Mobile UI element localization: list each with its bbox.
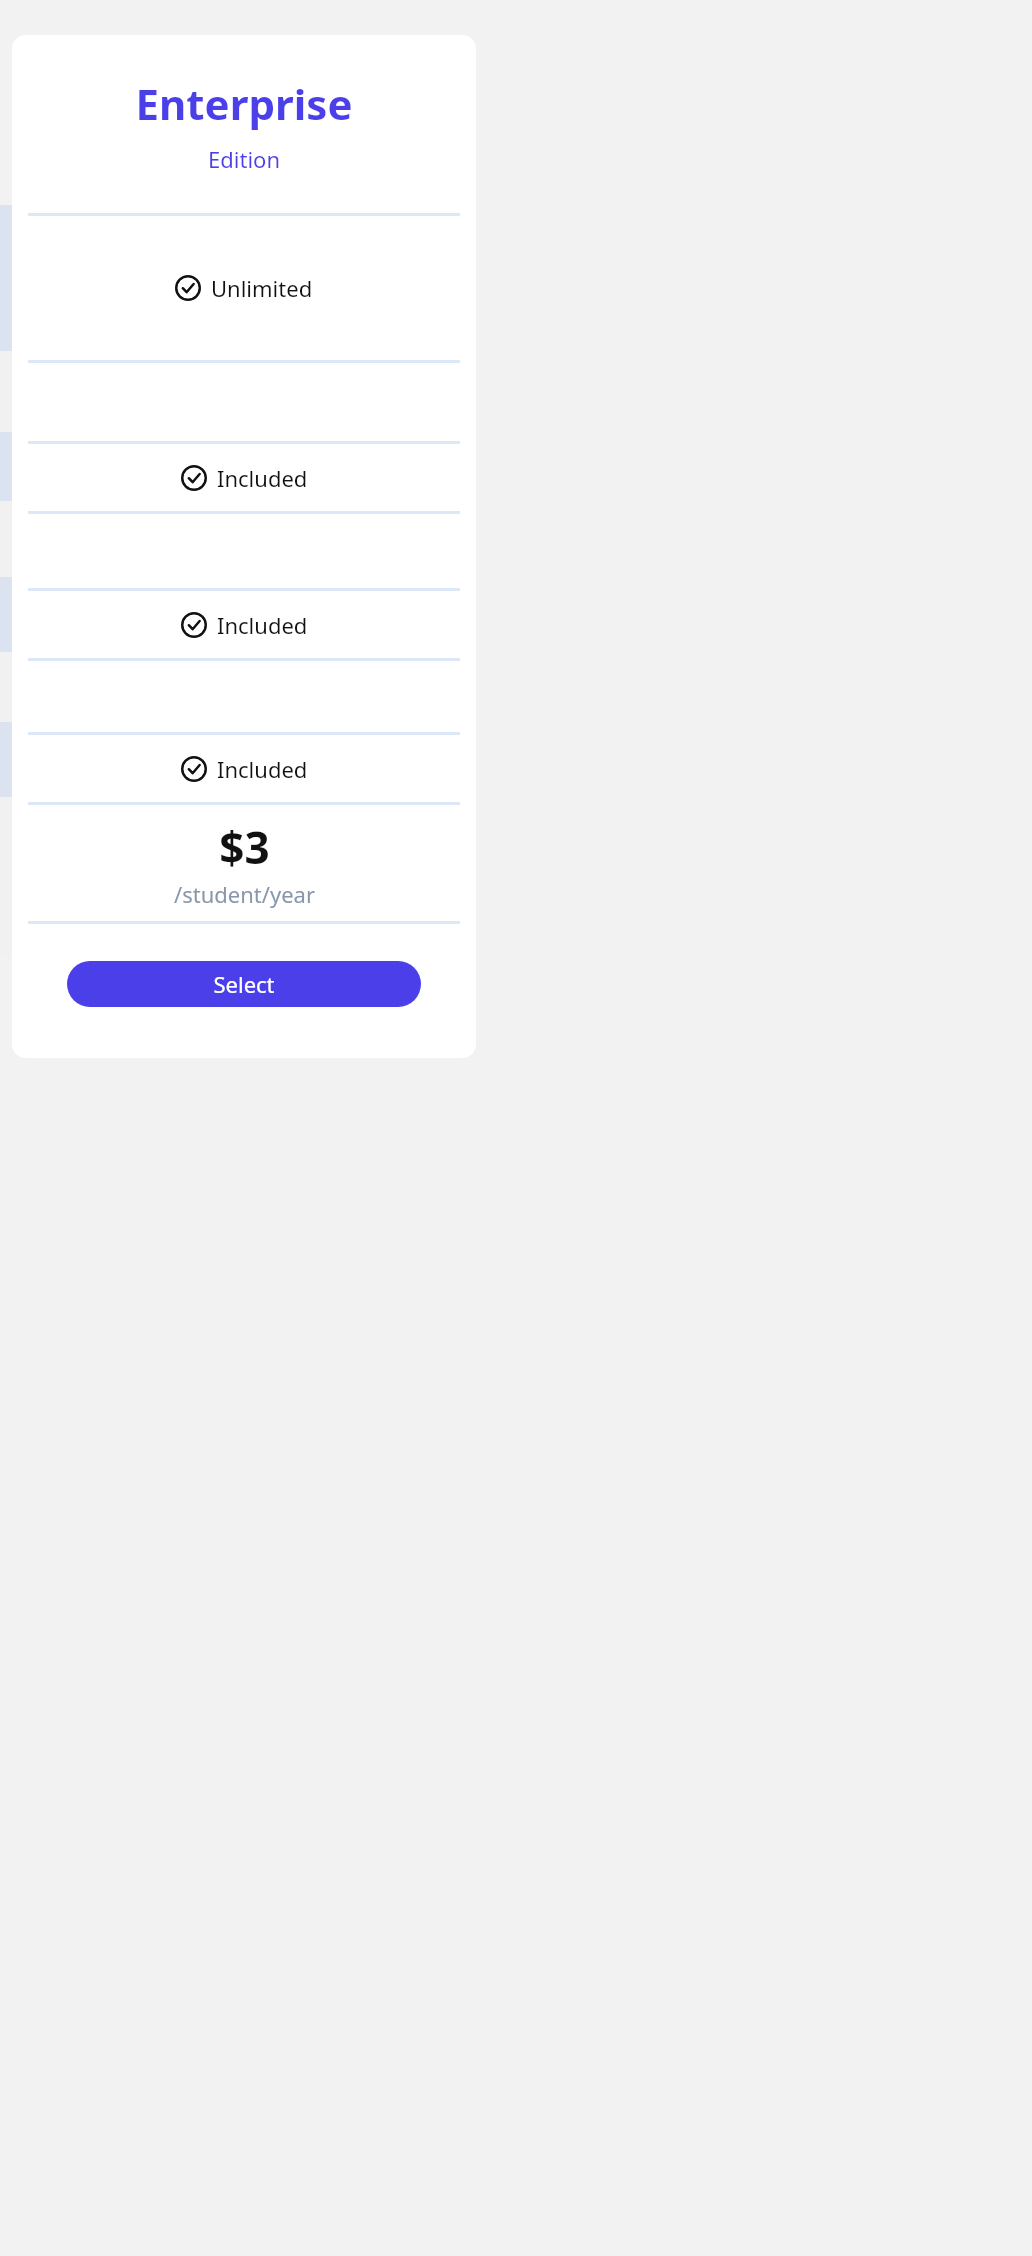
staticText: $3 — [219, 817, 270, 877]
staticText: Included — [217, 610, 308, 640]
staticText: /student/year — [174, 879, 315, 909]
button[interactable]: Unlimited — [28, 216, 460, 360]
staticText: Included — [217, 754, 308, 784]
staticText: Unlimited — [211, 273, 313, 303]
staticText: Included — [217, 463, 308, 493]
button[interactable]: Select Enterprise Edition plan — [67, 961, 421, 1007]
staticText: Edition — [12, 144, 476, 174]
button[interactable]: Included — [28, 735, 460, 802]
staticText: Select — [213, 969, 275, 999]
staticText: Enterprise — [12, 75, 476, 132]
button[interactable]: Included — [28, 444, 460, 511]
button[interactable]: Included — [28, 591, 460, 658]
